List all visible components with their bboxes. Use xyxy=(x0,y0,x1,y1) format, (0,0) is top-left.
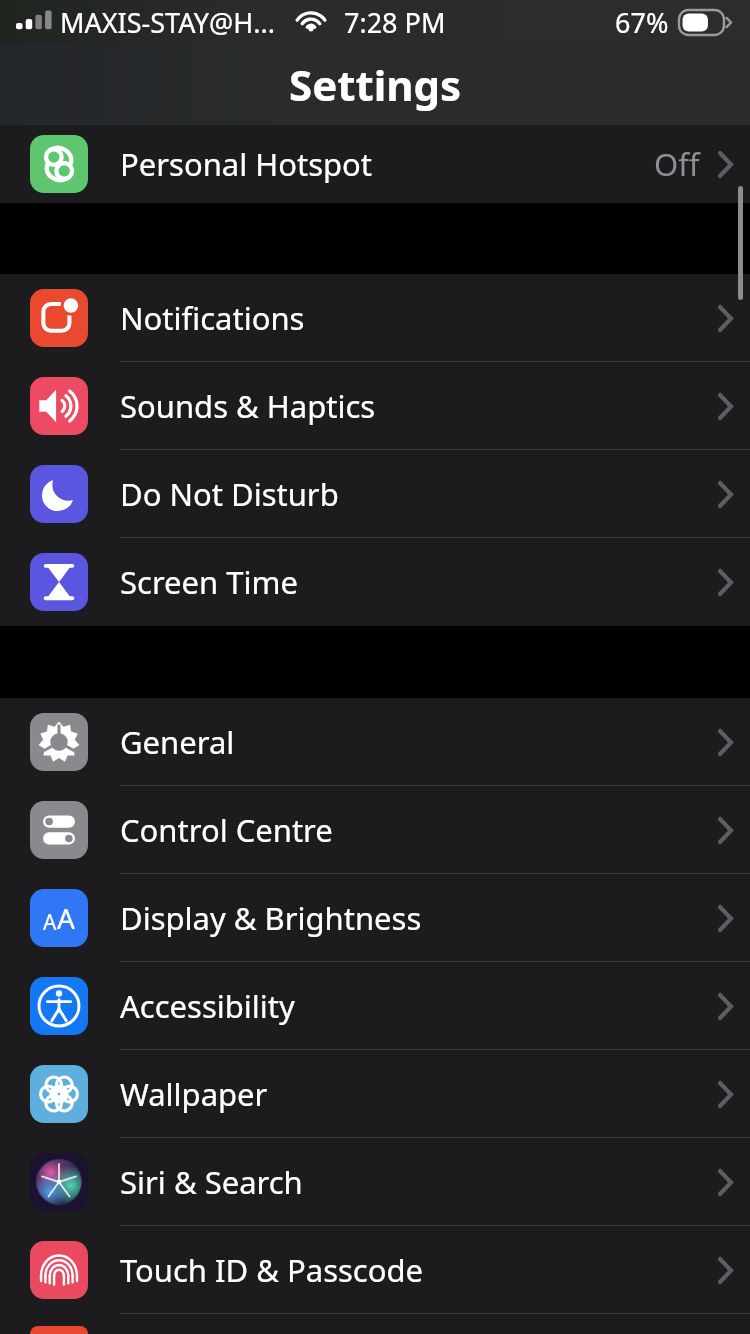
staticText: Accessibility xyxy=(120,985,295,1027)
staticText: Personal Hotspot xyxy=(120,143,373,185)
staticText: Screen Time xyxy=(120,561,298,603)
staticText: MAXIS-STAY@H... xyxy=(60,4,276,41)
staticText: 67% xyxy=(615,4,669,41)
button[interactable]: Siri & Search xyxy=(0,1138,750,1226)
staticText: A xyxy=(57,899,75,937)
staticText: Wallpaper xyxy=(120,1073,268,1115)
button[interactable]: Control Centre xyxy=(0,786,750,874)
button[interactable]: General xyxy=(0,698,750,786)
button[interactable]: Wallpaper xyxy=(0,1050,750,1138)
staticText: Touch ID & Passcode xyxy=(120,1249,424,1291)
button[interactable]: Sounds & Haptics xyxy=(0,362,750,450)
staticText: General xyxy=(120,721,235,763)
staticText: Siri & Search xyxy=(120,1161,303,1203)
button[interactable]: Screen Time xyxy=(0,538,750,626)
staticText: Do Not Disturb xyxy=(120,473,339,515)
button[interactable]: Face ID xyxy=(0,1314,750,1334)
staticText: Notifications xyxy=(120,297,305,339)
button[interactable]: Personal Hotspot xyxy=(0,125,750,203)
staticText: Settings xyxy=(289,56,462,113)
button[interactable]: Notifications xyxy=(0,274,750,362)
staticText: Off xyxy=(654,143,700,185)
button[interactable]: Accessibility xyxy=(0,962,750,1050)
staticText: Display & Brightness xyxy=(120,897,422,939)
staticText: A xyxy=(43,908,57,937)
button[interactable]: Touch ID & Passcode xyxy=(0,1226,750,1314)
button[interactable]: Do Not Disturb xyxy=(0,450,750,538)
staticText: 7:28 PM xyxy=(344,4,446,41)
staticText: Control Centre xyxy=(120,809,333,851)
staticText: Sounds & Haptics xyxy=(120,385,376,427)
button[interactable]: A xyxy=(0,874,750,962)
